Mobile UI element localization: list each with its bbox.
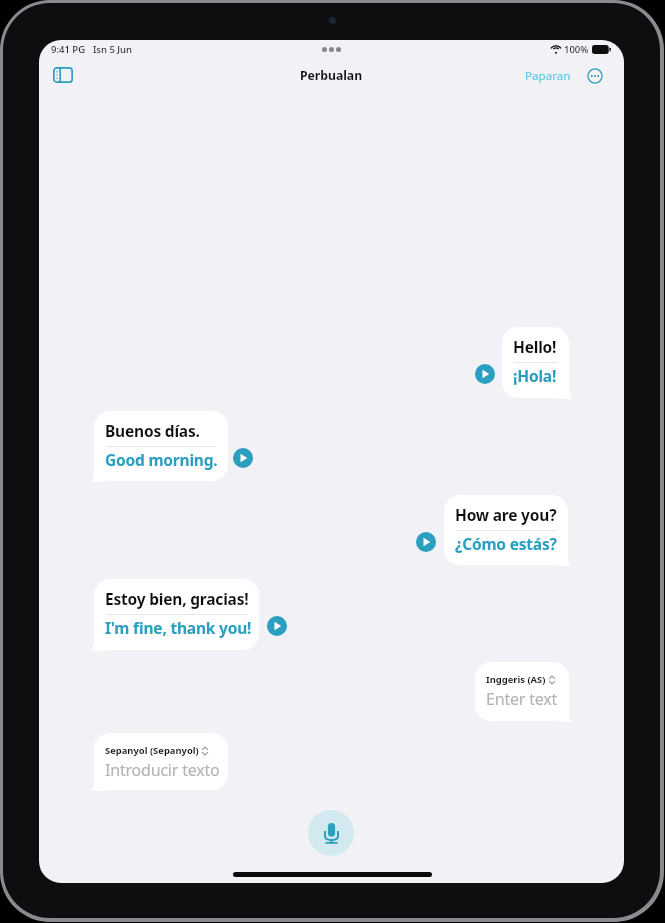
staticText: I'm fine, thank you! [105,617,252,638]
staticText: ¿Cómo estás? [455,533,557,554]
staticText: Sepanyol (Sepanyol) [105,744,199,757]
button[interactable]: Sepanyol (Sepanyol) [94,733,228,790]
staticText: Enter text [486,688,558,710]
staticText: Good morning. [105,449,218,470]
staticText: How are you? [455,504,557,525]
button[interactable]: Inggeris (AS) [475,662,569,721]
staticText: 9:41 PG [51,43,86,56]
staticText: Paparan [525,68,571,84]
button[interactable]: Play translation [475,364,495,384]
staticText: Introducir texto [105,759,220,781]
button[interactable]: Dictate with microphone [308,810,354,856]
staticText: Inggeris (AS) [486,673,546,686]
staticText: Isn 5 Jun [93,43,132,56]
button[interactable]: Play translation [233,448,253,468]
staticText: Buenos días. [105,420,200,441]
button[interactable]: Hello! [502,327,569,398]
staticText: 100% [564,43,589,56]
button[interactable]: Paparan [523,63,573,89]
button[interactable]: Buenos días. [94,411,228,481]
button[interactable]: Play translation [267,616,287,636]
staticText: Perbualan [300,67,363,84]
button[interactable]: How are you? [444,495,568,565]
button[interactable]: More options [587,68,603,84]
button[interactable]: Estoy bien, gracias! [94,579,259,650]
button[interactable]: Play translation [416,532,436,552]
staticText: Estoy bien, gracias! [105,588,249,609]
button[interactable]: Toggle sidebar [50,62,76,88]
staticText: Hello! [513,336,557,357]
staticText: ¡Hola! [513,365,557,386]
